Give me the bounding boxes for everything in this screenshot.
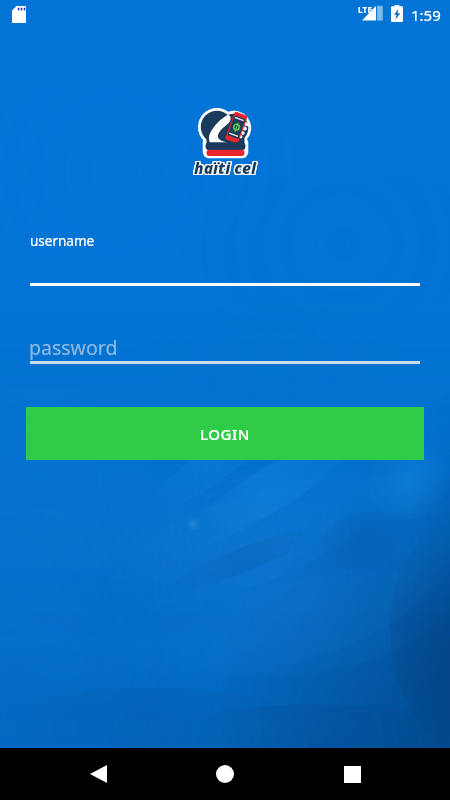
staticText: haïti cel <box>193 157 256 178</box>
button[interactable]: LOGIN <box>26 407 424 460</box>
staticText: password <box>29 334 118 361</box>
staticText: LTE <box>358 4 373 15</box>
button[interactable]: Home <box>203 752 247 796</box>
button[interactable]: Back <box>76 752 120 796</box>
staticText: haïti cel <box>194 156 257 177</box>
staticText: LOGIN <box>200 424 250 444</box>
staticText: haïti cel <box>194 158 257 179</box>
staticText: 1:59 <box>411 5 441 25</box>
staticText: haïti cel <box>195 156 258 177</box>
staticText: haïti cel <box>193 158 256 179</box>
button[interactable]: Recent apps <box>330 752 374 796</box>
staticText: username <box>30 232 95 250</box>
staticText: haïti cel <box>195 158 258 179</box>
button[interactable]: password <box>30 330 420 364</box>
staticText: haïti cel <box>194 157 257 178</box>
staticText: haïti cel <box>193 156 256 177</box>
button[interactable]: username <box>30 226 420 286</box>
staticText: haïti cel <box>195 157 258 178</box>
